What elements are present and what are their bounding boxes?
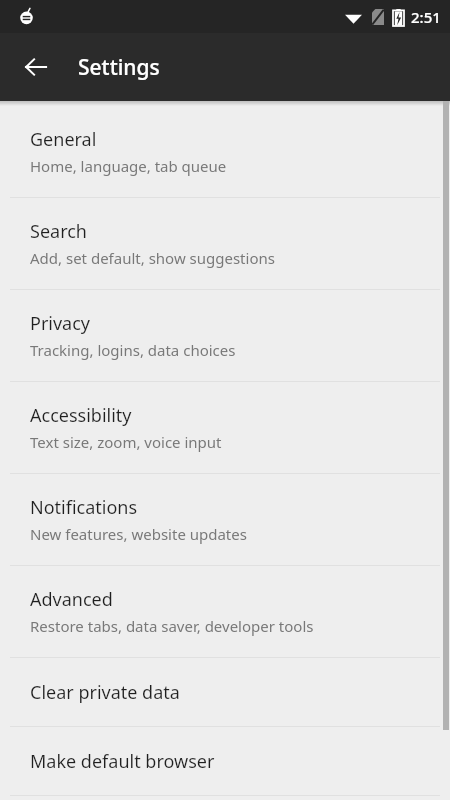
button[interactable]: Notifications (0, 474, 450, 565)
staticText: Privacy (30, 311, 91, 336)
button[interactable]: Accessibility (0, 382, 450, 473)
staticText: Accessibility (30, 403, 132, 428)
button[interactable]: Back (14, 45, 58, 89)
staticText: Home, language, tab queue (30, 156, 227, 176)
button[interactable]: Make default browser (0, 727, 450, 795)
staticText: New features, website updates (30, 524, 247, 544)
button[interactable]: Privacy (0, 290, 450, 381)
staticText: Text size, zoom, voice input (30, 432, 222, 452)
button[interactable]: Clear private data (0, 658, 450, 726)
staticText: Make default browser (30, 749, 215, 774)
staticText: General (30, 127, 97, 152)
staticText: Settings (78, 53, 160, 82)
staticText: Tracking, logins, data choices (30, 340, 236, 360)
staticText: 2:51 (411, 7, 441, 27)
button[interactable]: Advanced (0, 566, 450, 657)
staticText: Add, set default, show suggestions (30, 248, 275, 268)
staticText: Clear private data (30, 680, 180, 705)
staticText: Search (30, 219, 87, 244)
button[interactable]: Search (0, 198, 450, 289)
staticText: Advanced (30, 587, 113, 612)
button[interactable]: General (0, 106, 450, 197)
staticText: Restore tabs, data saver, developer tool… (30, 616, 314, 636)
staticText: Notifications (30, 495, 138, 520)
